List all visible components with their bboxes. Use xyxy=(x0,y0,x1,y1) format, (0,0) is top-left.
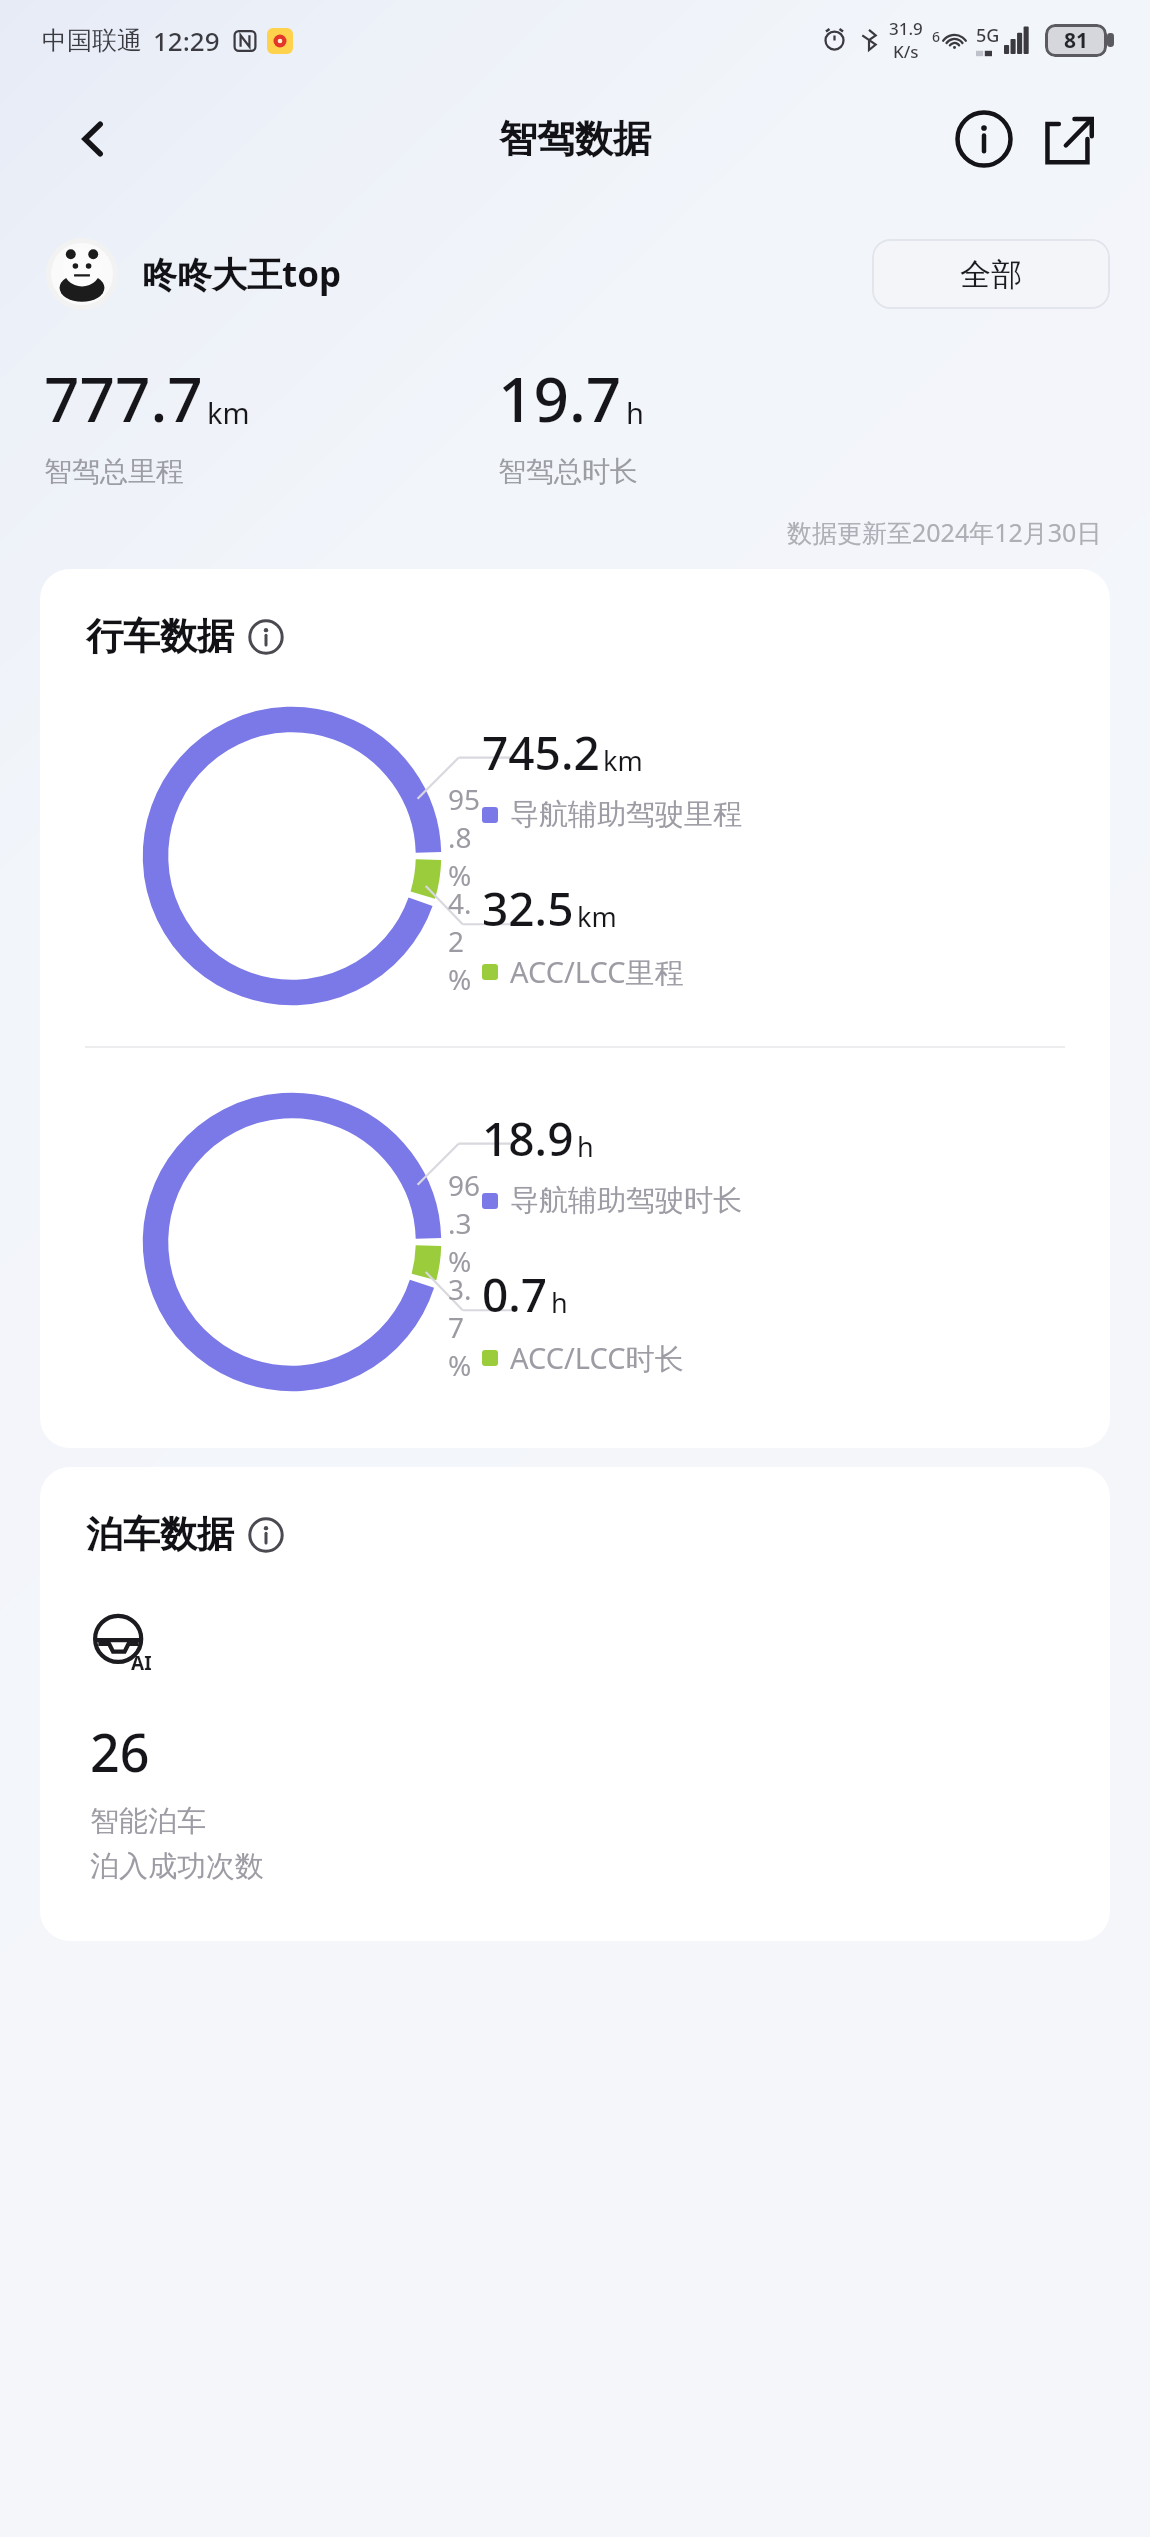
staticText: h xyxy=(551,1284,568,1321)
staticText: 导航辅助驾驶时长 xyxy=(510,1182,742,1219)
staticText: 19.7 xyxy=(498,356,622,440)
staticText: 95.8% xyxy=(448,780,482,894)
staticText: 0.7 xyxy=(482,1263,548,1326)
staticText: km xyxy=(603,742,643,779)
staticText: ACC/LCC里程 xyxy=(510,952,684,992)
button[interactable]: 行车数据 xyxy=(40,569,1110,1448)
button[interactable]: Info xyxy=(948,103,1020,175)
staticText: 745.2 xyxy=(482,721,600,784)
staticText: 31.9 xyxy=(889,17,923,40)
staticText: 6 xyxy=(932,27,941,46)
staticText: 5G xyxy=(976,23,1000,48)
staticText: 泊车数据 xyxy=(86,1511,234,1558)
staticText: 81 xyxy=(1064,26,1089,55)
staticText: 12:29 xyxy=(153,23,220,58)
staticText: 数据更新至2024年12月30日 xyxy=(787,515,1102,549)
staticText: h xyxy=(626,393,644,432)
staticText: 全部 xyxy=(960,255,1022,294)
button[interactable]: Share xyxy=(1032,103,1104,175)
button[interactable]: 泊车数据 xyxy=(40,1467,1110,1941)
staticText: 32.5 xyxy=(482,877,574,940)
staticText: km xyxy=(207,393,250,432)
staticText: 智驾总时长 xyxy=(498,454,638,489)
button[interactable]: 全部 xyxy=(872,239,1110,309)
staticText: 行车数据 xyxy=(86,613,234,660)
staticText: 智驾总里程 xyxy=(44,454,184,489)
staticText: 777.7 xyxy=(44,356,203,440)
staticText: 18.9 xyxy=(482,1107,574,1170)
button[interactable]: Back xyxy=(60,106,126,172)
staticText: 96.3% xyxy=(448,1166,482,1280)
staticText: km xyxy=(577,898,617,935)
staticText: 26 xyxy=(90,1716,150,1787)
staticText: 智能泊车 xyxy=(90,1803,206,1840)
staticText: h xyxy=(577,1128,594,1165)
staticText: 咚咚大王top xyxy=(142,250,342,298)
staticText: 3.7% xyxy=(448,1270,482,1384)
staticText: ACC/LCC时长 xyxy=(510,1338,684,1378)
staticText: 导航辅助驾驶里程 xyxy=(510,796,742,833)
staticText: K/s xyxy=(893,40,919,63)
staticText: AI xyxy=(131,1650,152,1676)
staticText: 泊入成功次数 xyxy=(90,1848,264,1885)
staticText: 中国联通 xyxy=(42,25,142,56)
staticText: 智驾数据 xyxy=(499,115,651,163)
staticText: 4.2% xyxy=(448,884,482,998)
